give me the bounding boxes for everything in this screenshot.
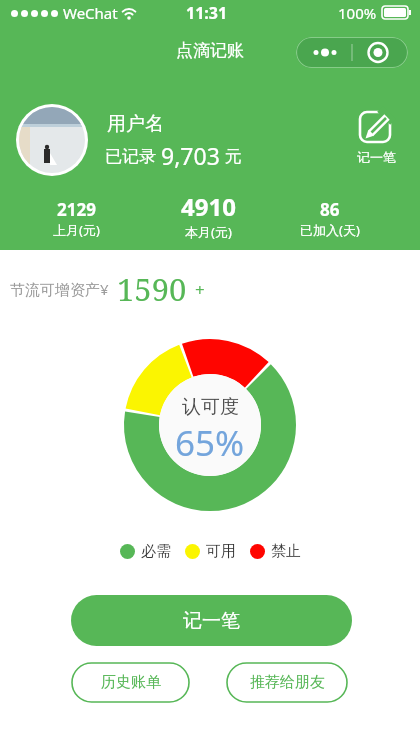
staticText: 已加入(天) xyxy=(300,221,360,239)
staticText: 65% xyxy=(175,419,245,467)
button[interactable]: 记一笔 xyxy=(71,595,352,646)
staticText: 认可度 xyxy=(182,395,239,419)
staticText: 记一笔 xyxy=(183,609,240,633)
staticText: 已记录 xyxy=(105,144,161,167)
staticText: 历史账单 xyxy=(101,673,161,692)
staticText: 记一笔 xyxy=(357,149,396,165)
staticText: 点滴记账 xyxy=(176,40,244,61)
staticText: 用户名 xyxy=(107,112,164,136)
staticText: 86 xyxy=(320,198,340,221)
staticText: 本月(元) xyxy=(185,223,232,241)
staticText: 2129 xyxy=(57,198,96,221)
staticText: 上月(元) xyxy=(53,221,100,239)
staticText: 节流可增资产¥ xyxy=(10,279,109,299)
staticText: 9,703 xyxy=(161,140,220,171)
staticText: WeChat xyxy=(63,3,118,23)
staticText: 1590 xyxy=(117,268,187,310)
button[interactable] xyxy=(16,104,88,176)
staticText: 推荐给朋友 xyxy=(250,673,325,692)
staticText: 禁止 xyxy=(271,542,301,561)
staticText: + xyxy=(195,278,205,301)
staticText: 可用 xyxy=(206,542,236,561)
button[interactable]: 推荐给朋友 xyxy=(226,662,348,703)
staticText: 4910 xyxy=(181,190,236,223)
staticText: 必需 xyxy=(141,542,171,561)
staticText: 元 xyxy=(220,144,242,167)
staticText: 100% xyxy=(338,3,377,23)
button[interactable] xyxy=(296,37,408,68)
button[interactable]: 历史账单 xyxy=(71,662,190,703)
button[interactable]: 记一笔 xyxy=(352,108,400,165)
staticText: 11:31 xyxy=(186,2,228,24)
